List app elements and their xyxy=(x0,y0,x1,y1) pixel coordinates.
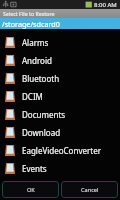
staticText: Select File to Restore xyxy=(3,10,55,17)
staticText: Download xyxy=(22,127,61,138)
button[interactable]: DCIM xyxy=(0,87,120,105)
staticText: Documents xyxy=(22,109,66,120)
button[interactable]: Android xyxy=(0,51,120,69)
button[interactable]: Alarms xyxy=(0,33,120,51)
staticText: Events xyxy=(22,163,47,174)
button[interactable]: OK xyxy=(2,181,59,198)
staticText: OK xyxy=(27,186,35,194)
button[interactable]: EagleVideoConverter xyxy=(0,141,120,159)
staticText: /storage/sdcard0 xyxy=(2,19,60,29)
button[interactable]: Events xyxy=(0,159,120,177)
button[interactable]: Cancel xyxy=(61,181,118,198)
staticText: EagleVideoConverter xyxy=(22,145,101,156)
staticText: Alarms xyxy=(22,37,49,48)
staticText: Android xyxy=(22,55,52,66)
button[interactable]: Bluetooth xyxy=(0,69,120,87)
other: USB connected, screenshot captured xyxy=(0,0,120,9)
staticText: DCIM xyxy=(22,91,43,102)
button[interactable]: Documents xyxy=(0,105,120,123)
staticText: Bluetooth xyxy=(22,73,60,84)
button[interactable]: Download xyxy=(0,123,120,141)
staticText: 8:00 AM xyxy=(94,1,117,9)
button[interactable]: /storage/sdcard0 xyxy=(0,18,120,29)
staticText: Cancel xyxy=(81,186,99,194)
